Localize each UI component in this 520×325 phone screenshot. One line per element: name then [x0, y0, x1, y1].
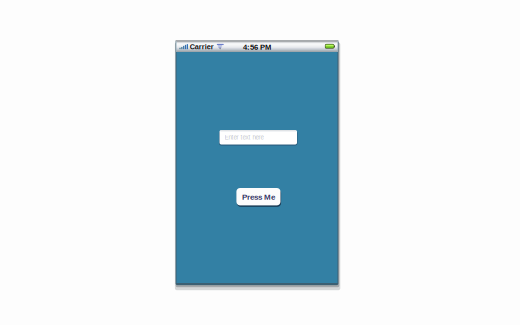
staticText: Carrier: [190, 43, 214, 51]
button[interactable]: Press Me: [236, 188, 281, 207]
staticText: 4:56 PM: [243, 43, 271, 51]
button[interactable]: Enter text here: [219, 130, 297, 144]
staticText: Press Me: [242, 192, 275, 201]
staticText: Enter text here: [224, 134, 263, 141]
